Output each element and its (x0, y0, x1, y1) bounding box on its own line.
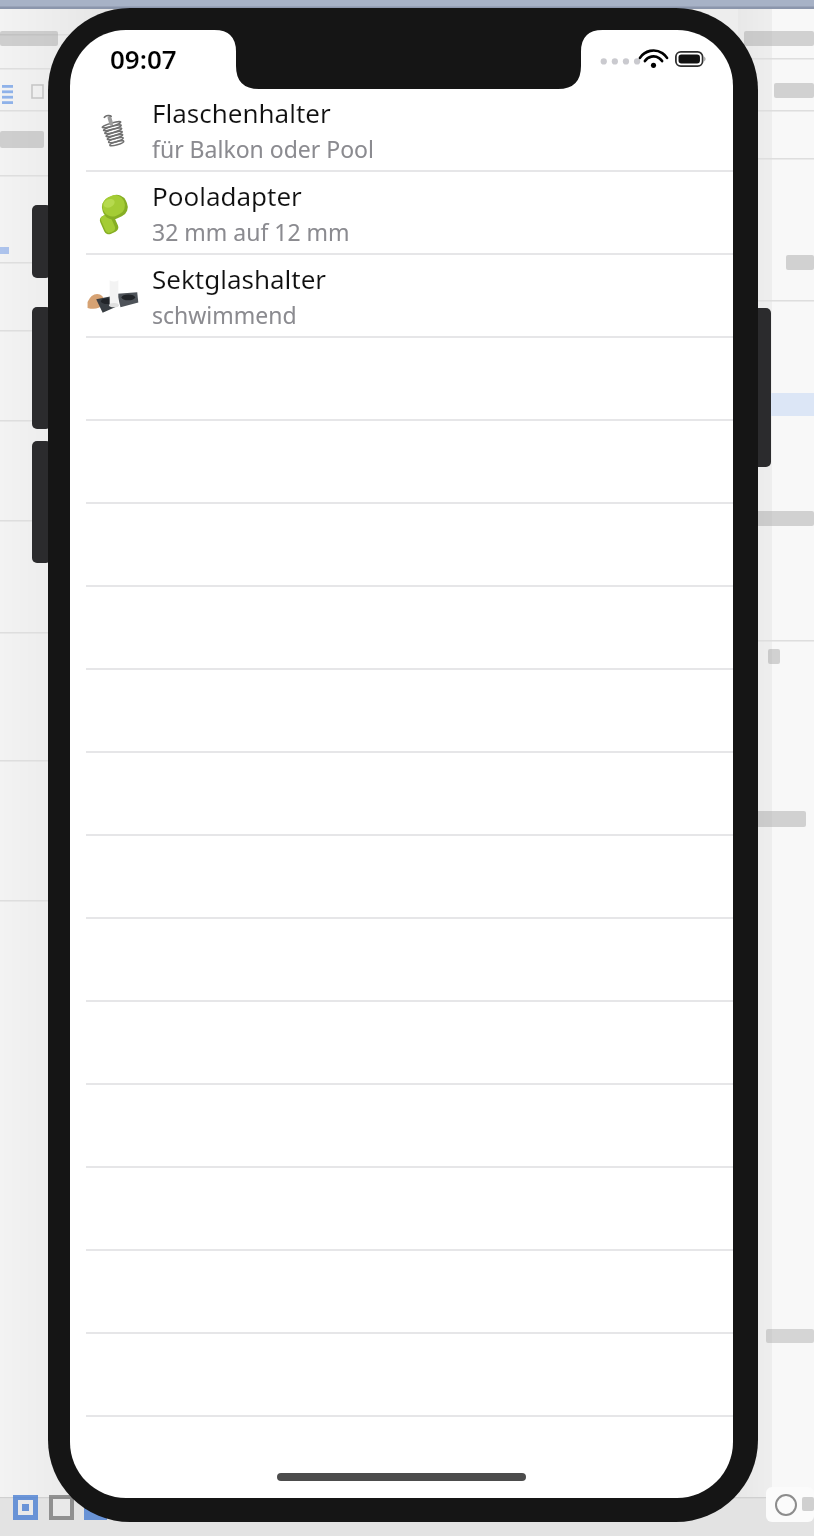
button[interactable] (70, 1251, 733, 1334)
other: Home indicator (277, 1473, 526, 1481)
button[interactable]: Pooladapter (70, 172, 733, 255)
button[interactable]: Flaschenhalter (70, 89, 733, 172)
button[interactable] (70, 338, 733, 421)
button[interactable] (70, 919, 733, 1002)
button[interactable] (70, 1002, 733, 1085)
button[interactable] (70, 587, 733, 670)
staticText: für Balkon oder Pool (152, 133, 374, 164)
staticText: Pooladapter (152, 178, 302, 213)
staticText: schwimmend (152, 299, 297, 330)
button[interactable]: Sektglashalter (70, 255, 733, 338)
button[interactable] (70, 836, 733, 919)
button[interactable] (70, 1168, 733, 1251)
staticText: Flaschenhalter (152, 95, 331, 130)
button[interactable] (70, 504, 733, 587)
button[interactable] (70, 753, 733, 836)
staticText: 32 mm auf 12 mm (152, 216, 350, 247)
button[interactable] (70, 1334, 733, 1417)
button[interactable] (70, 1085, 733, 1168)
button[interactable] (70, 421, 733, 504)
button[interactable] (70, 670, 733, 753)
staticText: Sektglashalter (152, 261, 327, 296)
button[interactable] (70, 1417, 733, 1498)
staticText: 09:07 (110, 41, 177, 76)
